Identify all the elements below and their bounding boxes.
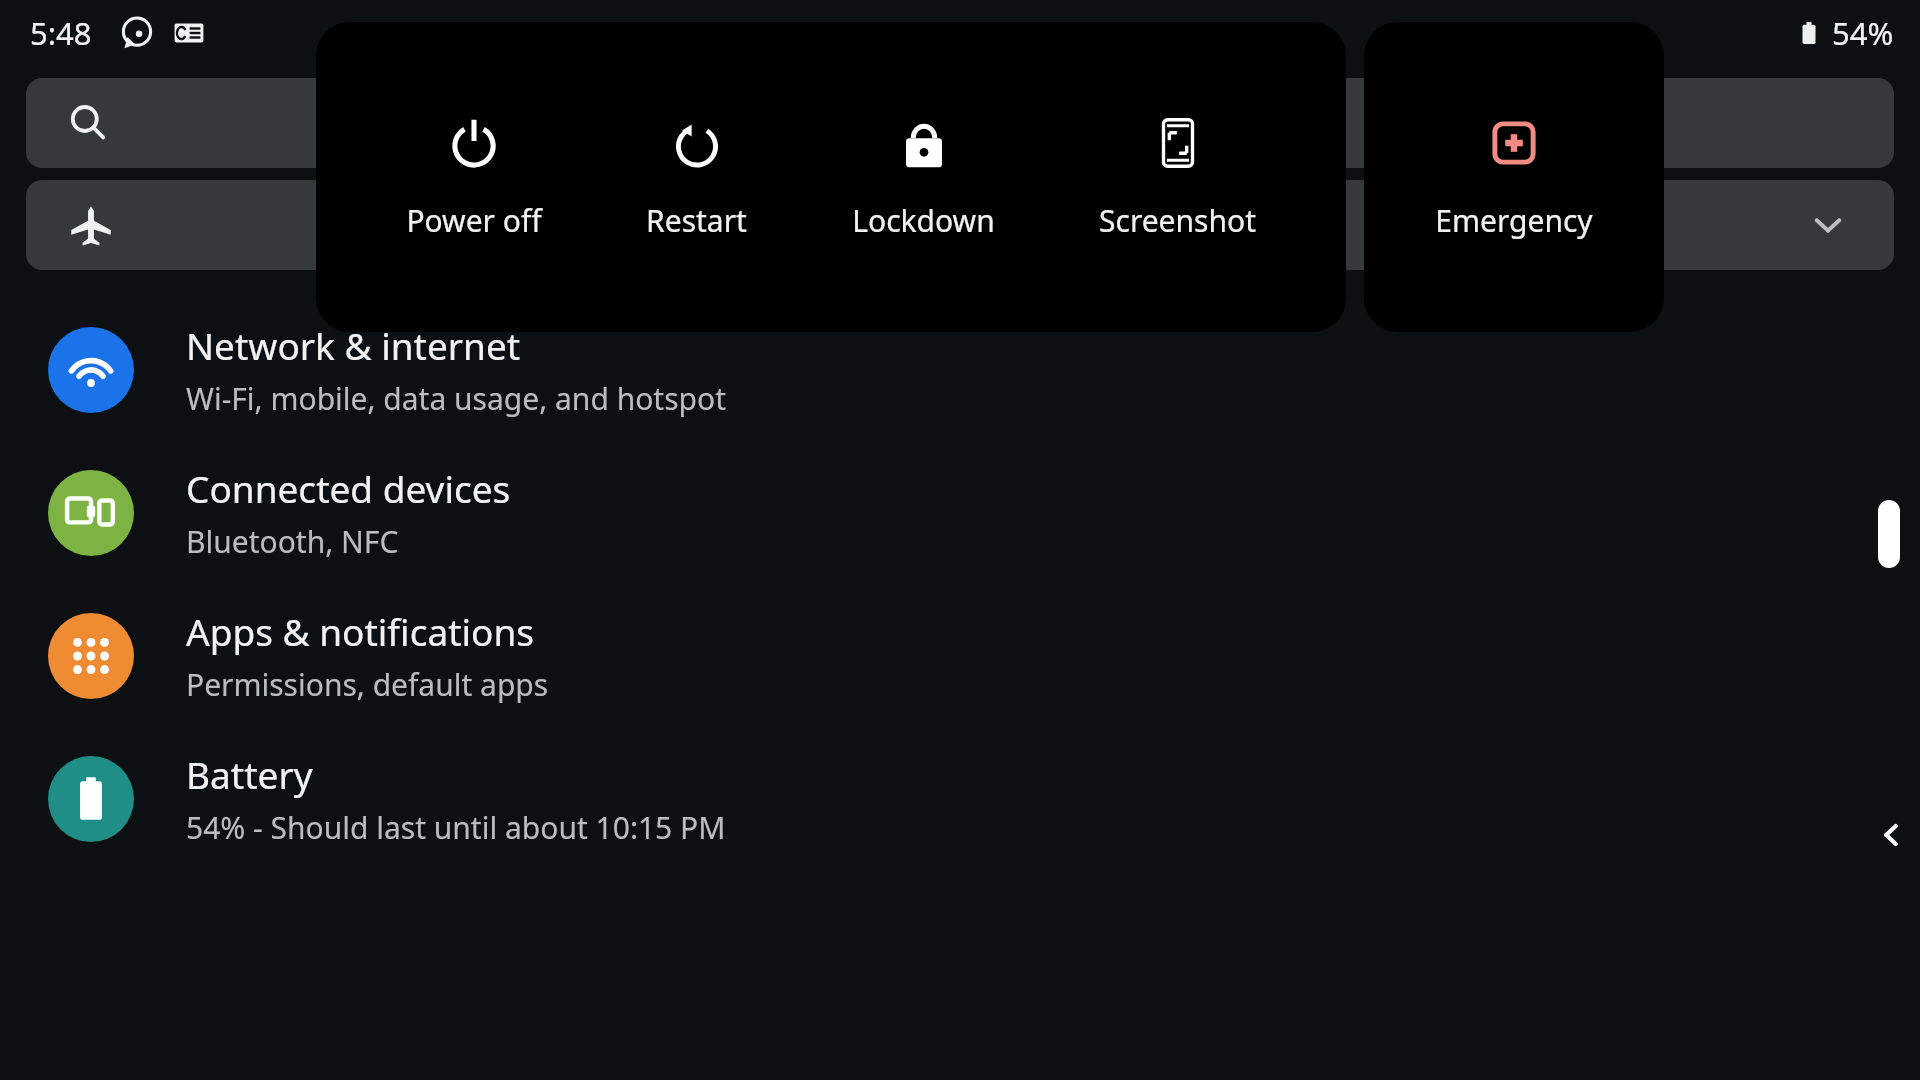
staticText: Wi-Fi, mobile, data usage, and hotspot: [186, 378, 726, 419]
other: Expand: [1808, 205, 1848, 245]
staticText: Network & internet: [186, 320, 521, 370]
other: Airplane mode: [70, 204, 112, 246]
button[interactable]: Connected devices: [0, 463, 1920, 562]
staticText: Power off: [406, 200, 542, 241]
button[interactable]: Emergency: [1364, 22, 1664, 332]
staticText: Battery: [186, 749, 313, 799]
button[interactable]: Battery: [0, 749, 1920, 848]
staticText: Screenshot: [1099, 200, 1256, 241]
button[interactable]: Search: [26, 78, 1894, 168]
button[interactable]: Emergency: [1421, 106, 1607, 249]
button[interactable]: Airplane mode: [26, 180, 1894, 270]
button[interactable]: Screenshot: [1085, 106, 1270, 249]
staticText: 54%: [1832, 12, 1894, 54]
staticText: 5:48: [30, 12, 92, 54]
staticText: Emergency: [1435, 200, 1593, 241]
other: Search: [68, 103, 108, 143]
button[interactable]: Network & internet: [0, 320, 1920, 419]
staticText: Connected devices: [186, 463, 511, 513]
button[interactable]: Lockdown: [838, 106, 1009, 249]
button[interactable]: Power off: [392, 106, 556, 249]
staticText: Bluetooth, NFC: [186, 521, 399, 562]
button[interactable]: Apps & notifications: [0, 606, 1920, 705]
staticText: 54% - Should last until about 10:15 PM: [186, 807, 726, 848]
other: Back: [1876, 820, 1906, 850]
staticText: Permissions, default apps: [186, 664, 549, 705]
staticText: Lockdown: [852, 200, 995, 241]
button[interactable]: Restart: [632, 106, 761, 249]
staticText: Apps & notifications: [186, 606, 535, 656]
staticText: Restart: [646, 200, 747, 241]
